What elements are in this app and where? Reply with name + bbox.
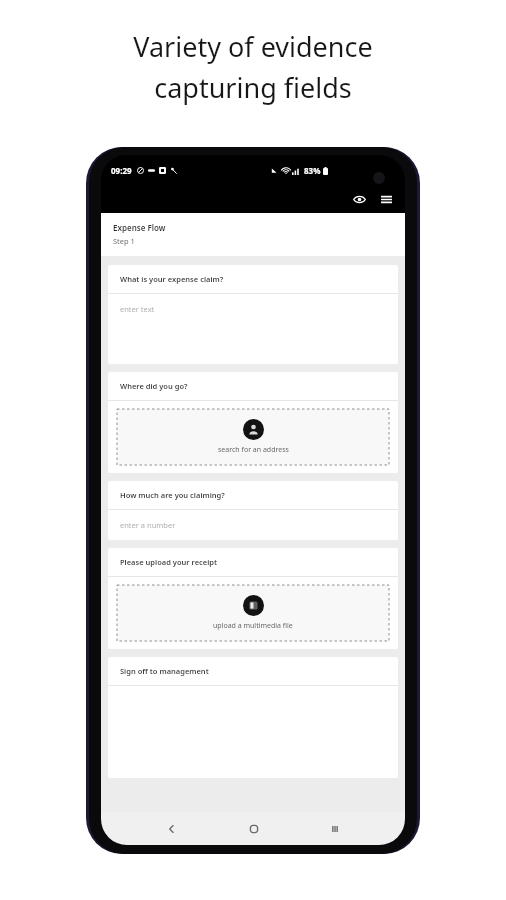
- staticText: Variety of evidence: [133, 28, 373, 65]
- staticText: Expense Flow: [113, 222, 166, 233]
- button[interactable]: Back: [131, 812, 213, 845]
- button[interactable]: search for an address: [117, 409, 389, 465]
- button[interactable]: Please upload your receipt: [108, 548, 398, 649]
- staticText: Step 1: [113, 236, 135, 246]
- button[interactable]: How much are you claiming?: [108, 481, 398, 540]
- staticText: enter text: [120, 304, 155, 314]
- button[interactable]: Where did you go?: [108, 372, 398, 473]
- staticText: What is your expense claim?: [120, 274, 224, 284]
- staticText: search for an address: [218, 445, 289, 455]
- staticText: capturing fields: [154, 69, 352, 106]
- button[interactable]: Recents: [294, 812, 375, 845]
- staticText: Sign off to management: [120, 666, 209, 676]
- staticText: 83%: [304, 165, 321, 176]
- button[interactable]: Expense Flow: [101, 213, 405, 256]
- staticText: enter a number: [120, 520, 176, 530]
- staticText: Where did you go?: [120, 381, 188, 391]
- staticText: Please upload your receipt: [120, 557, 218, 567]
- staticText: upload a multimedia file: [213, 621, 293, 631]
- staticText: How much are you claiming?: [120, 490, 225, 500]
- button[interactable]: upload a multimedia file: [117, 585, 389, 641]
- button[interactable]: Menu: [376, 189, 396, 209]
- button[interactable]: What is your expense claim?: [108, 265, 398, 364]
- button[interactable]: Preview: [349, 189, 369, 209]
- button[interactable]: Sign off to management: [108, 657, 398, 778]
- staticText: 09:29: [111, 165, 132, 176]
- button[interactable]: Home: [213, 812, 294, 845]
